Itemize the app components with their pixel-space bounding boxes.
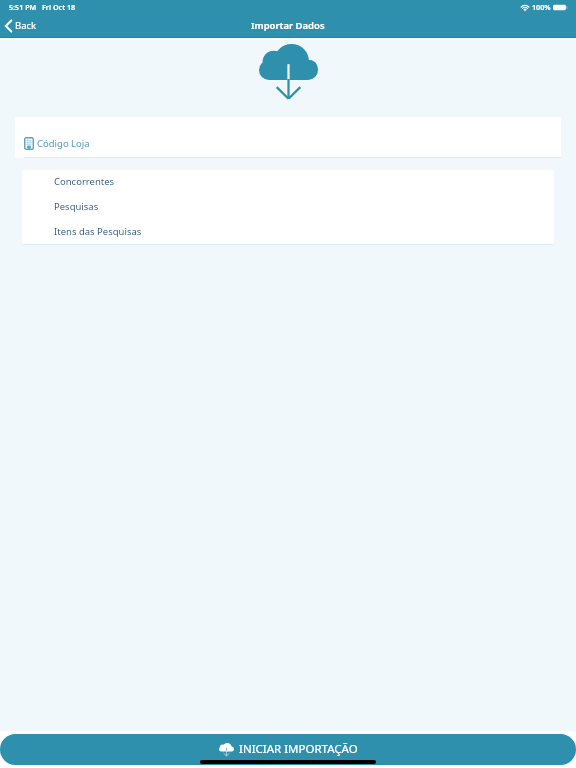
staticText: Pesquisas: [54, 200, 99, 213]
staticText: Back: [15, 19, 37, 32]
button[interactable]: Pesquisas: [22, 195, 554, 220]
staticText: Importar Dados: [251, 19, 325, 32]
staticText: INICIAR IMPORTAÇÃO: [239, 741, 358, 757]
staticText: 5:51 PM: [9, 2, 37, 12]
button[interactable]: Código Loja: [15, 117, 561, 158]
other: Importar dados da nuvem: [259, 44, 318, 99]
button[interactable]: Back: [0, 16, 45, 35]
button[interactable]: INICIAR IMPORTAÇÃO: [0, 734, 576, 765]
staticText: Concorrentes: [54, 175, 115, 188]
button[interactable]: Itens das Pesquisas: [22, 220, 554, 245]
staticText: 100%: [532, 2, 551, 12]
staticText: Itens das Pesquisas: [54, 225, 142, 238]
staticText: Fri Oct 18: [42, 2, 76, 12]
button[interactable]: Concorrentes: [22, 170, 554, 195]
staticText: Código Loja: [37, 137, 90, 150]
